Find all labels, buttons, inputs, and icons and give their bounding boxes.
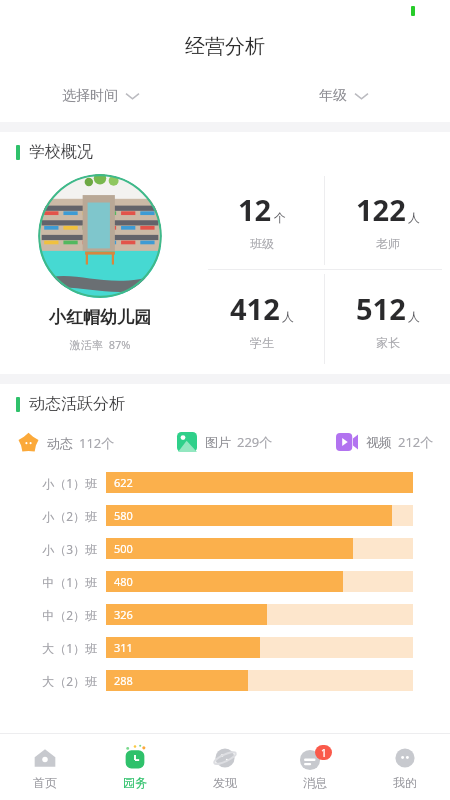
- button[interactable]: 中（1）班: [0, 565, 450, 598]
- button[interactable]: 大（2）班: [0, 664, 450, 697]
- staticText: 大（2）班: [42, 673, 97, 689]
- staticText: 学生: [250, 335, 274, 350]
- staticText: 412: [230, 289, 280, 328]
- button[interactable]: 122: [325, 172, 450, 269]
- button[interactable]: 学校照片: [38, 174, 162, 298]
- staticText: 311: [114, 640, 133, 655]
- staticText: 人: [408, 210, 420, 225]
- staticText: 动态活跃分析: [29, 394, 125, 414]
- button[interactable]: 动态: [16, 430, 117, 455]
- staticText: 中（1）班: [42, 574, 97, 590]
- staticText: 288: [114, 673, 133, 688]
- staticText: 大（1）班: [42, 640, 97, 656]
- staticText: 学校概况: [29, 142, 93, 162]
- button[interactable]: 小（3）班: [0, 532, 450, 565]
- staticText: 122: [356, 190, 406, 229]
- button[interactable]: 小（1）班: [0, 466, 450, 499]
- staticText: 229个: [237, 433, 273, 451]
- staticText: 小红帽幼儿园: [49, 307, 151, 328]
- staticText: 我的: [393, 775, 417, 790]
- button[interactable]: 图片: [175, 430, 275, 454]
- staticText: 激活率 87%: [70, 337, 131, 352]
- button[interactable]: 512: [325, 270, 450, 368]
- staticText: 212个: [398, 433, 434, 451]
- staticText: 1: [321, 746, 327, 760]
- staticText: 老师: [376, 236, 400, 251]
- button[interactable]: 年级: [315, 83, 372, 109]
- staticText: 图片: [205, 434, 231, 450]
- staticText: 中（2）班: [42, 607, 97, 623]
- staticText: 选择时间: [62, 87, 118, 105]
- other: 我的: [393, 746, 417, 770]
- staticText: 人: [282, 309, 294, 324]
- button[interactable]: 大（1）班: [0, 631, 450, 664]
- staticText: 小（3）班: [42, 541, 97, 557]
- button[interactable]: 发现: [180, 734, 270, 800]
- button[interactable]: 小（2）班: [0, 499, 450, 532]
- staticText: 动态: [47, 435, 73, 451]
- staticText: 512: [356, 289, 406, 328]
- button[interactable]: 中（2）班: [0, 598, 450, 631]
- staticText: 园务: [123, 775, 147, 790]
- staticText: 112个: [79, 434, 115, 452]
- staticText: 消息: [303, 775, 327, 790]
- staticText: 580: [114, 508, 133, 523]
- staticText: 班级: [250, 236, 274, 251]
- other: 园务: [122, 745, 148, 771]
- button[interactable]: 首页: [0, 734, 90, 800]
- staticText: 视频: [366, 434, 392, 450]
- staticText: 经营分析: [185, 34, 265, 59]
- staticText: 小（2）班: [42, 508, 97, 524]
- other: 首页: [33, 746, 57, 770]
- button[interactable]: 412: [200, 270, 324, 368]
- button[interactable]: 选择时间: [58, 83, 143, 109]
- staticText: 人: [408, 309, 420, 324]
- staticText: 个: [274, 210, 286, 225]
- button[interactable]: 12: [200, 172, 324, 269]
- staticText: 500: [114, 541, 133, 556]
- staticText: 326: [114, 607, 133, 622]
- staticText: 622: [114, 475, 133, 490]
- button[interactable]: 视频: [334, 431, 436, 453]
- button[interactable]: 我的: [360, 734, 450, 800]
- staticText: 发现: [213, 775, 237, 790]
- staticText: 年级: [319, 87, 347, 105]
- other: 发现: [213, 746, 237, 770]
- button[interactable]: 消息: [270, 734, 360, 800]
- staticText: 480: [114, 574, 133, 589]
- staticText: 首页: [33, 775, 57, 790]
- staticText: 家长: [376, 335, 400, 350]
- button[interactable]: 园务: [90, 734, 180, 800]
- staticText: 小（1）班: [42, 475, 97, 491]
- other: 消息: [298, 745, 332, 772]
- staticText: 12: [238, 190, 272, 229]
